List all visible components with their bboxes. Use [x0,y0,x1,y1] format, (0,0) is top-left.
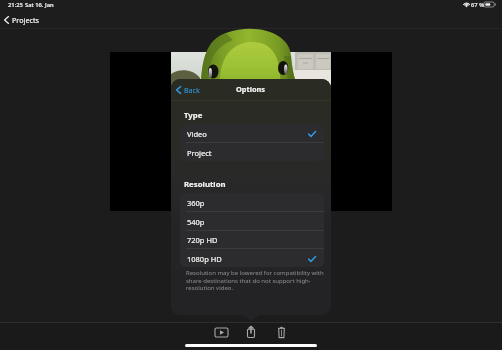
button[interactable]: Delete [271,324,291,340]
staticText: 540p [187,217,205,227]
button[interactable]: 1080p HD [180,249,324,267]
button[interactable]: 540p [180,212,324,231]
button[interactable]: Share [241,324,261,340]
staticText: Back [184,85,200,95]
staticText: Resolution may be lowered for compatibil… [186,269,324,292]
staticText: 1080p HD [187,254,222,264]
button[interactable]: Back [176,79,203,100]
staticText: Sat 16. Jan [25,1,54,9]
button[interactable]: Play preview [211,325,231,340]
staticText: 21:25 [8,1,23,9]
staticText: 67 % [471,1,485,9]
staticText: Video [187,129,207,139]
button[interactable]: 720p HD [180,230,324,249]
staticText: Resolution [184,179,226,190]
staticText: Project [187,148,212,158]
button[interactable]: Project [180,143,324,161]
staticText: Options [236,84,266,94]
button[interactable]: Projects [4,12,39,28]
staticText: Projects [12,15,39,25]
button[interactable]: Video [180,124,324,143]
button[interactable]: 360p [180,193,324,212]
staticText: 720p HD [187,235,218,245]
staticText: 360p [187,198,205,208]
staticText: Type [184,110,203,121]
